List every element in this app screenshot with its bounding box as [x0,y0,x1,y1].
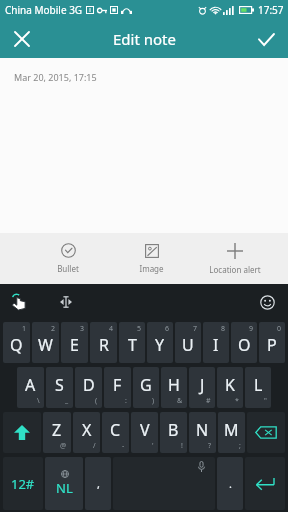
staticText: : [125,396,127,406]
button[interactable]: . [217,457,243,510]
staticText: ? [208,441,212,451]
button[interactable]: 0 [259,322,285,363]
button[interactable]: F [104,367,131,408]
staticText: Image [139,263,164,274]
staticText: 7 [193,324,198,334]
staticText: @ [60,441,67,451]
staticText: R [99,334,109,356]
button[interactable]: D [75,367,102,408]
staticText: A [25,374,36,396]
button[interactable]: 8 [203,322,229,363]
staticText: Q [10,334,23,356]
staticText: B [168,419,179,441]
staticText: G [140,374,152,396]
staticText: ' [152,441,154,451]
button[interactable]: Z [43,412,71,453]
button[interactable]: 12# [3,457,43,510]
staticText: _ [65,396,69,406]
button[interactable]: A [17,367,44,408]
button[interactable]: 3 [61,322,88,363]
staticText: / [93,441,96,451]
staticText: L [254,374,263,396]
button[interactable]: K [217,367,243,408]
button[interactable]: S [46,367,73,408]
staticText: 8 [221,324,226,334]
staticText: I [213,334,219,356]
button[interactable]: 6 [147,322,173,363]
staticText: M [224,419,239,441]
staticText: 9 [249,324,254,334]
staticText: 1 [22,324,27,334]
staticText: P [267,334,277,356]
button[interactable]: G [133,367,159,408]
staticText: - [122,441,125,451]
staticText: , [97,476,100,491]
button[interactable]: Move cursor [53,289,79,315]
staticText: Y [155,334,165,356]
staticText: N [196,419,209,441]
button[interactable]: NL [45,457,83,510]
button[interactable]: 2 [32,322,59,363]
staticText: W [38,334,53,356]
button[interactable]: X [73,412,100,453]
button[interactable]: 1 [3,322,30,363]
staticText: 17:57 [258,3,284,17]
staticText: T [128,334,137,356]
button[interactable]: Shift [3,412,41,453]
staticText: # [206,396,211,406]
staticText: K [225,374,235,396]
staticText: D [83,374,95,396]
button[interactable]: 9 [231,322,257,363]
staticText: F [113,374,122,396]
staticText: 3 [80,324,85,334]
button[interactable]: Image [110,233,193,284]
button[interactable]: H [161,367,187,408]
staticText: J [200,374,205,396]
button[interactable]: Space [113,457,215,510]
button[interactable]: Save [244,20,288,58]
button[interactable]: V [131,412,158,453]
staticText: 12# [11,475,35,493]
button[interactable]: Emoji [254,289,280,315]
staticText: E [70,334,79,356]
staticText: 2 [51,324,56,334]
staticText: Edit note [113,29,176,49]
staticText: Mar 20, 2015, 17:15 [14,71,97,83]
button[interactable]: Handwriting [7,289,33,315]
staticText: NL [56,479,73,497]
staticText: China Mobile 3G [5,3,83,17]
staticText: O [238,334,251,356]
staticText: * [235,396,239,406]
button[interactable]: J [189,367,215,408]
button[interactable]: Location alert [193,233,276,284]
staticText: ) [152,396,155,406]
staticText: U [182,334,194,356]
button[interactable]: Mar 20, 2015, 17:15 [0,58,288,233]
staticText: 0 [277,324,282,334]
staticText: Z [52,419,62,441]
staticText: S [55,374,64,396]
button[interactable]: , [85,457,111,510]
button[interactable]: 7 [175,322,201,363]
button[interactable]: B [160,412,187,453]
staticText: 4 [109,324,114,334]
staticText: . [229,476,232,491]
button[interactable]: L [245,367,271,408]
button[interactable]: Bullet [26,233,110,284]
staticText: & [177,396,183,406]
button[interactable]: Enter [245,457,285,510]
staticText: V [140,419,150,441]
staticText: " [264,396,267,406]
button[interactable]: C [102,412,129,453]
button[interactable]: 5 [119,322,145,363]
staticText: ( [95,396,98,406]
staticText: C [110,419,121,441]
button[interactable]: M [218,412,245,453]
staticText: \ [37,396,40,406]
button[interactable]: Close [0,20,44,58]
button[interactable]: N [189,412,216,453]
button[interactable]: Backspace [247,412,285,453]
staticText: Location alert [209,264,261,275]
button[interactable]: 4 [90,322,117,363]
staticText: Bullet [57,263,79,274]
